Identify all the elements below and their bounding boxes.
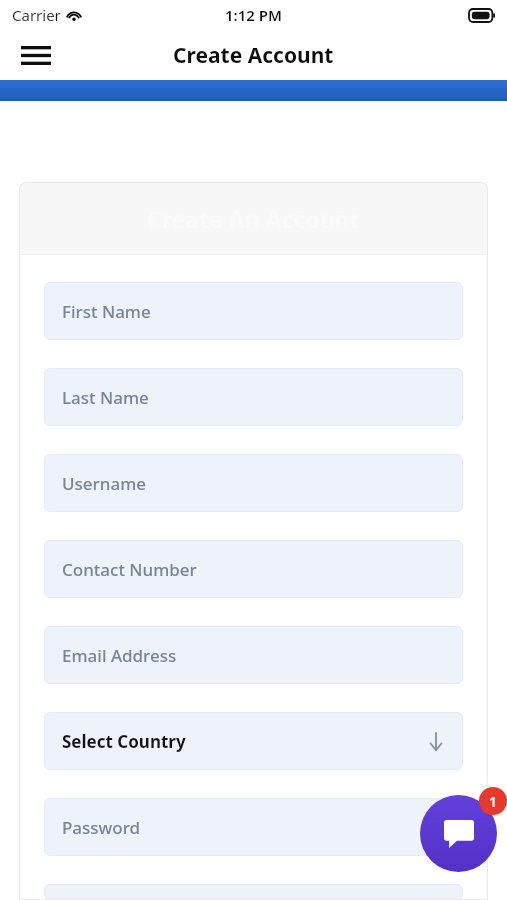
staticText: Username — [62, 472, 146, 495]
button[interactable]: Email Address — [44, 626, 463, 684]
button[interactable]: Select Country — [44, 712, 463, 770]
staticText: Last Name — [62, 386, 149, 409]
staticText: 1 — [489, 792, 498, 811]
button[interactable]: Contact Number — [44, 540, 463, 598]
button[interactable]: Open navigation menu — [14, 33, 58, 77]
staticText: Email Address — [62, 644, 177, 667]
staticText: Select Country — [62, 730, 186, 753]
staticText: Password — [62, 816, 141, 839]
button[interactable]: First Name — [44, 282, 463, 340]
staticText: Contact Number — [62, 558, 197, 581]
staticText: Create Account — [173, 41, 334, 70]
button[interactable]: Password — [44, 798, 463, 856]
button[interactable]: Username — [44, 454, 463, 512]
button[interactable]: Open chat, 1 unread message — [420, 795, 497, 872]
button[interactable] — [44, 884, 463, 900]
staticText: First Name — [62, 300, 151, 323]
button[interactable]: Last Name — [44, 368, 463, 426]
staticText: Carrier — [12, 5, 61, 25]
staticText: 1:12 PM — [225, 5, 282, 25]
